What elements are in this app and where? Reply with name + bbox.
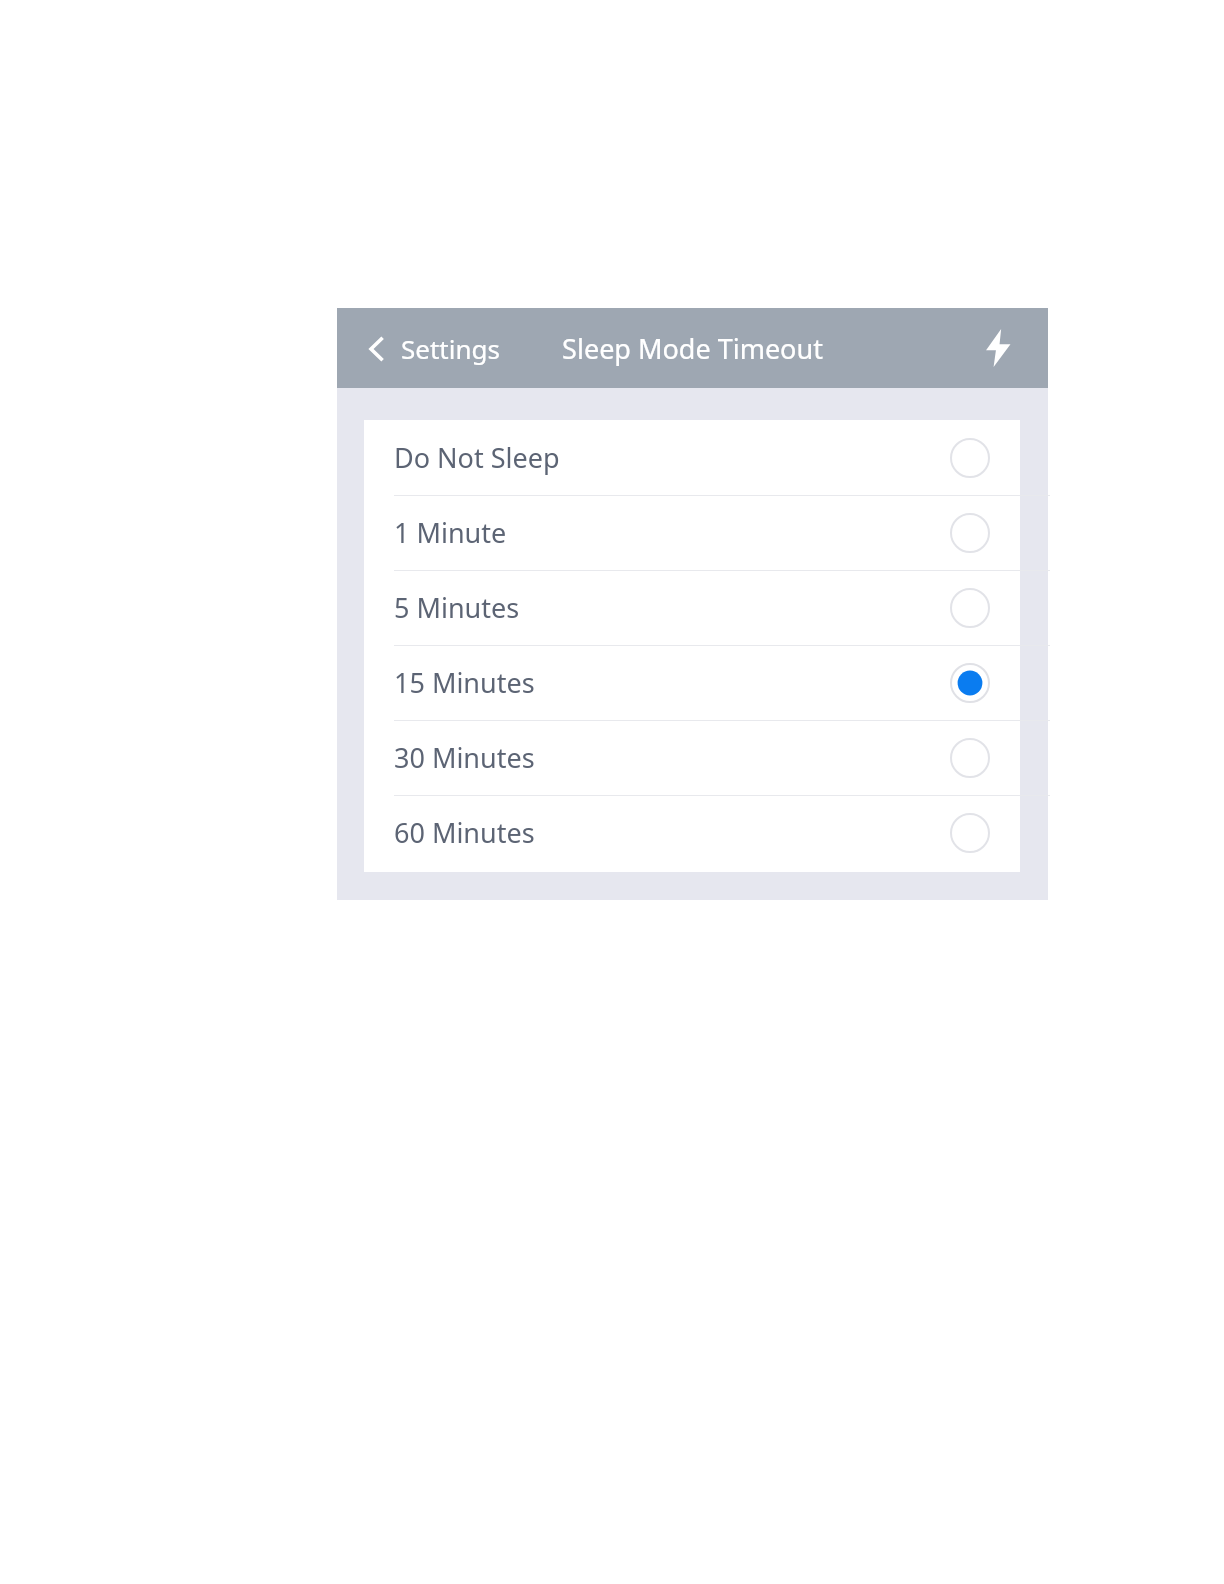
staticText: Sleep Mode Timeout xyxy=(562,330,823,367)
button[interactable]: Power xyxy=(976,326,1020,370)
button[interactable]: 30 Minutes xyxy=(364,720,1020,795)
button[interactable]: Do Not Sleep xyxy=(364,420,1020,495)
staticText: Do Not Sleep xyxy=(394,439,560,476)
button[interactable]: Settings xyxy=(359,323,508,374)
staticText: 5 Minutes xyxy=(394,589,520,626)
staticText: 30 Minutes xyxy=(394,739,535,776)
button[interactable]: 1 Minute xyxy=(364,495,1020,570)
staticText: Settings xyxy=(401,331,500,366)
staticText: 15 Minutes xyxy=(394,664,535,701)
staticText: 60 Minutes xyxy=(394,814,535,851)
button[interactable]: 5 Minutes xyxy=(364,570,1020,645)
button[interactable]: 15 Minutes xyxy=(364,645,1020,720)
button[interactable]: 60 Minutes xyxy=(364,795,1020,870)
staticText: 1 Minute xyxy=(394,514,507,551)
